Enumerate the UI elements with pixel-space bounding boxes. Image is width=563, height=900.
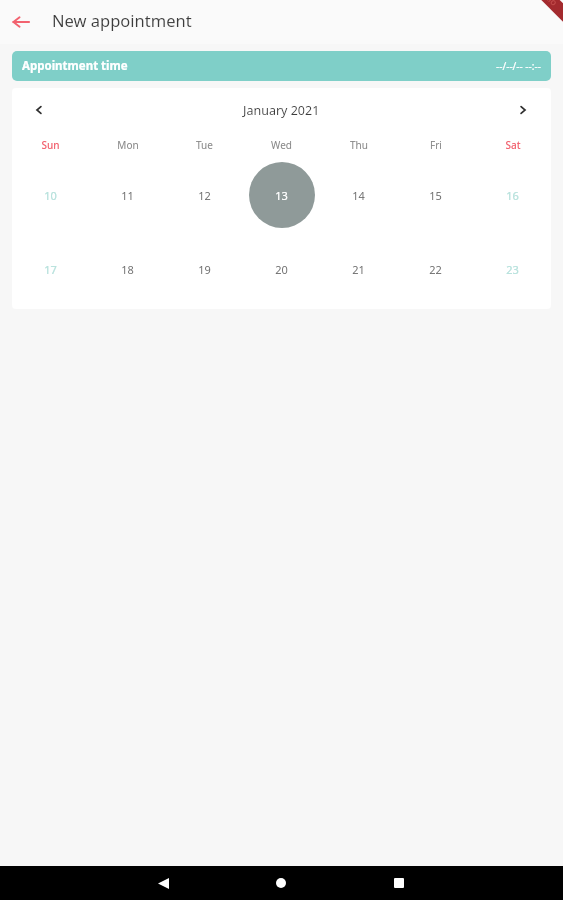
button[interactable]: Back [7, 8, 35, 36]
staticText: 15 [429, 188, 442, 203]
staticText: 11 [121, 188, 134, 203]
button[interactable]: 18 [89, 232, 166, 306]
button[interactable]: 12 [166, 158, 243, 232]
staticText: Sat [505, 138, 521, 152]
staticText: Mon [117, 138, 139, 152]
button[interactable]: 23 [474, 232, 551, 306]
button[interactable]: 15 [397, 158, 474, 232]
staticText: Sun [41, 138, 60, 152]
button[interactable]: Back [148, 868, 178, 898]
staticText: 19 [198, 262, 211, 277]
staticText: Tue [196, 138, 213, 152]
staticText: 14 [352, 188, 365, 203]
button[interactable]: Home [266, 868, 296, 898]
staticText: Thu [350, 138, 368, 152]
staticText: Wed [271, 138, 292, 152]
button[interactable]: 11 [89, 158, 166, 232]
staticText: 22 [429, 262, 442, 277]
button[interactable]: Next month [508, 95, 538, 125]
staticText: New appointment [52, 9, 192, 31]
button[interactable]: 19 [166, 232, 243, 306]
staticText: 18 [121, 262, 134, 277]
button[interactable]: 14 [320, 158, 397, 232]
button[interactable]: 20 [243, 232, 320, 306]
button[interactable]: Previous month [24, 95, 54, 125]
staticText: 23 [506, 262, 519, 277]
staticText: DEMO [536, 0, 559, 9]
staticText: 10 [44, 188, 57, 203]
staticText: 12 [198, 188, 211, 203]
staticText: Appointment time [22, 58, 128, 74]
button[interactable]: 13 [243, 158, 320, 232]
staticText: 17 [44, 262, 57, 277]
staticText: 16 [506, 188, 519, 203]
button[interactable]: 21 [320, 232, 397, 306]
button[interactable]: 10 [12, 158, 89, 232]
button[interactable]: 22 [397, 232, 474, 306]
staticText: --/--/-- --:-- [496, 59, 541, 73]
staticText: 13 [275, 188, 288, 203]
button[interactable]: Recent apps [384, 868, 414, 898]
button[interactable]: 17 [12, 232, 89, 306]
button[interactable]: Appointment time [12, 51, 551, 81]
staticText: January 2021 [243, 102, 320, 119]
staticText: 20 [275, 262, 288, 277]
staticText: Fri [430, 138, 442, 152]
staticText: 21 [352, 262, 365, 277]
button[interactable]: 16 [474, 158, 551, 232]
